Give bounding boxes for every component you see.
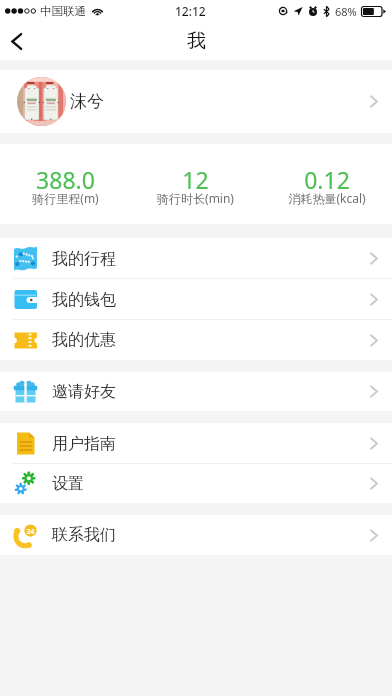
button[interactable]: 我的优惠 bbox=[0, 320, 392, 360]
staticText: 邀请好友 bbox=[52, 382, 116, 402]
button[interactable]: Back bbox=[0, 22, 33, 60]
staticText: 12 bbox=[182, 164, 209, 195]
button[interactable]: 24 bbox=[0, 515, 392, 555]
button[interactable]: 沫兮 bbox=[0, 70, 392, 133]
button[interactable]: 用户指南 bbox=[0, 423, 392, 464]
staticText: 388.0 bbox=[36, 164, 95, 195]
button[interactable]: 我的钱包 bbox=[0, 279, 392, 320]
staticText: 24 bbox=[26, 527, 35, 537]
button[interactable]: 设置 bbox=[0, 464, 392, 503]
staticText: 12:12 bbox=[175, 3, 206, 19]
staticText: 68% bbox=[335, 4, 357, 19]
staticText: 用户指南 bbox=[52, 434, 116, 454]
button[interactable]: 邀请好友 bbox=[0, 372, 392, 411]
staticText: 沫兮 bbox=[70, 91, 104, 112]
staticText: 联系我们 bbox=[52, 525, 116, 545]
staticText: 设置 bbox=[52, 474, 84, 494]
button[interactable]: 我的行程 bbox=[0, 238, 392, 279]
staticText: 我的钱包 bbox=[52, 290, 116, 310]
staticText: 我 bbox=[187, 29, 206, 53]
staticText: 我的行程 bbox=[52, 249, 116, 269]
staticText: 我的优惠 bbox=[52, 330, 116, 350]
staticText: 消耗热量(kcal) bbox=[288, 190, 366, 206]
staticText: 骑行里程(m) bbox=[32, 190, 99, 206]
staticText: 0.12 bbox=[304, 164, 350, 195]
staticText: 中国联通 bbox=[40, 4, 86, 18]
staticText: 骑行时长(min) bbox=[157, 190, 234, 206]
